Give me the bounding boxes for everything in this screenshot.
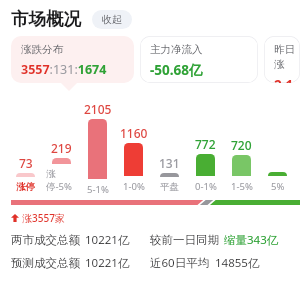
staticText: 14855亿: [215, 255, 260, 271]
staticText: 主力净流入: [150, 43, 203, 56]
staticText: 3557:131:1674: [21, 61, 107, 78]
staticText: 73: [19, 155, 33, 171]
staticText: 10221亿: [85, 255, 130, 271]
staticText: 两市成交总额: [11, 233, 80, 247]
button[interactable]: 1160: [118, 125, 149, 193]
staticText: 5-1%: [87, 183, 109, 193]
staticText: 预测成交总额: [11, 256, 80, 270]
button[interactable]: 收起: [92, 10, 132, 29]
button[interactable]: 219: [46, 140, 77, 193]
button[interactable]: 2105: [82, 101, 113, 193]
staticText: 涨停-5%: [46, 168, 77, 193]
staticText: 0-1%: [195, 180, 217, 193]
staticText: 10221亿: [85, 232, 130, 248]
staticText: 5%: [271, 180, 285, 193]
staticText: 1-0%: [123, 180, 145, 193]
staticText: 涨停: [16, 181, 35, 193]
staticText: 219: [51, 140, 72, 156]
button[interactable]: 预测成交总额: [11, 255, 300, 271]
staticText: 昨日涨: [274, 43, 300, 71]
staticText: 缩量343亿: [224, 232, 279, 248]
staticText: 近60日平均: [150, 255, 210, 271]
staticText: 131: [159, 155, 180, 171]
staticText: 涨跌分布: [21, 43, 63, 56]
staticText: 涨3557家: [22, 211, 65, 225]
staticText: 2105: [84, 101, 112, 117]
staticText: 720: [231, 137, 252, 153]
staticText: -50.68亿: [150, 61, 203, 79]
other: Rising: [11, 214, 19, 222]
staticText: 2.13%: [274, 76, 300, 83]
button[interactable]: 主力净流入: [140, 36, 258, 83]
button[interactable]: 5%: [262, 172, 293, 193]
button[interactable]: 772: [190, 136, 221, 193]
staticText: 较前一日同期: [150, 233, 219, 247]
staticText: 1-5%: [231, 180, 253, 193]
staticText: 772: [195, 136, 216, 152]
staticText: 市场概况: [11, 8, 81, 30]
button[interactable]: 昨日涨: [264, 36, 300, 83]
button[interactable]: 73: [10, 155, 41, 193]
button[interactable]: 涨跌分布: [11, 36, 134, 83]
staticText: 收起: [102, 13, 122, 26]
staticText: 1160: [120, 125, 148, 141]
button[interactable]: 两市成交总额: [11, 232, 300, 248]
staticText: 平盘: [160, 181, 179, 193]
button[interactable]: 131: [154, 155, 185, 193]
button[interactable]: 720: [226, 137, 257, 193]
